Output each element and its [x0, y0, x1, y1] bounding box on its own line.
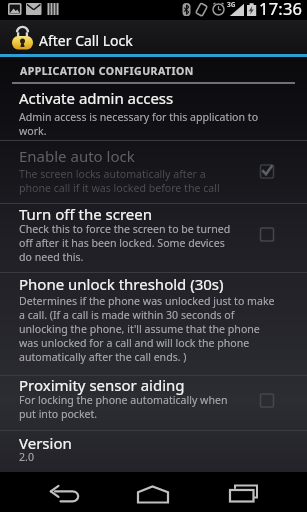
staticText: For locking the phone automatically when…	[19, 393, 228, 421]
staticText: Turn off the screen	[19, 204, 153, 224]
staticText: APPLICATION CONFIGURATION	[20, 64, 194, 78]
staticText: Activate admin access	[19, 88, 174, 108]
button[interactable]	[30, 474, 100, 512]
staticText: After Call Lock	[39, 31, 133, 50]
button[interactable]: Activate admin access	[0, 84, 307, 140]
staticText: 17:36	[259, 0, 303, 19]
button[interactable]: Turn off the screen	[0, 203, 307, 272]
button[interactable]: Enable auto lock	[0, 141, 307, 203]
staticText: Determines if the phone was unlocked jus…	[19, 294, 275, 364]
staticText: The screen locks automatically after a p…	[19, 167, 220, 195]
staticText: 2.0	[19, 450, 34, 464]
staticText: Proximity sensor aiding	[19, 375, 185, 395]
staticText: Enable auto lock	[19, 146, 135, 166]
button[interactable]: Version	[0, 430, 307, 472]
button[interactable]	[123, 474, 183, 512]
staticText: Admin access is necessary for this appli…	[19, 110, 259, 138]
staticText: Phone unlock threshold (30s)	[19, 274, 224, 294]
staticText: 3G	[227, 0, 236, 9]
button[interactable]	[0, 20, 307, 54]
button[interactable]	[218, 474, 278, 512]
staticText: Check this to force the screen to be tur…	[19, 222, 231, 264]
button[interactable]: Proximity sensor aiding	[0, 375, 307, 429]
staticText: Version	[19, 433, 72, 453]
button[interactable]: Phone unlock threshold (30s)	[0, 272, 307, 374]
